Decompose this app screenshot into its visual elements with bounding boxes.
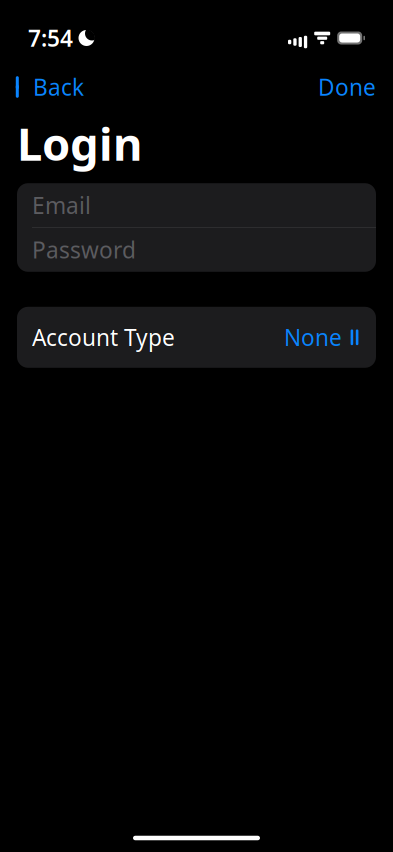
staticText: Login (17, 113, 142, 173)
button[interactable]: Account Type (17, 307, 376, 368)
staticText: 7:54 (28, 23, 73, 53)
staticText: Account Type (32, 322, 175, 352)
staticText: None (284, 322, 342, 352)
staticText: Password (32, 235, 136, 265)
button[interactable]: Back (5, 65, 94, 109)
staticText: Back (33, 72, 84, 102)
button[interactable]: Password (17, 228, 376, 272)
staticText: Done (318, 72, 376, 102)
staticText: Email (32, 190, 91, 220)
button[interactable]: Email (17, 183, 376, 227)
button[interactable]: Done (306, 65, 388, 109)
